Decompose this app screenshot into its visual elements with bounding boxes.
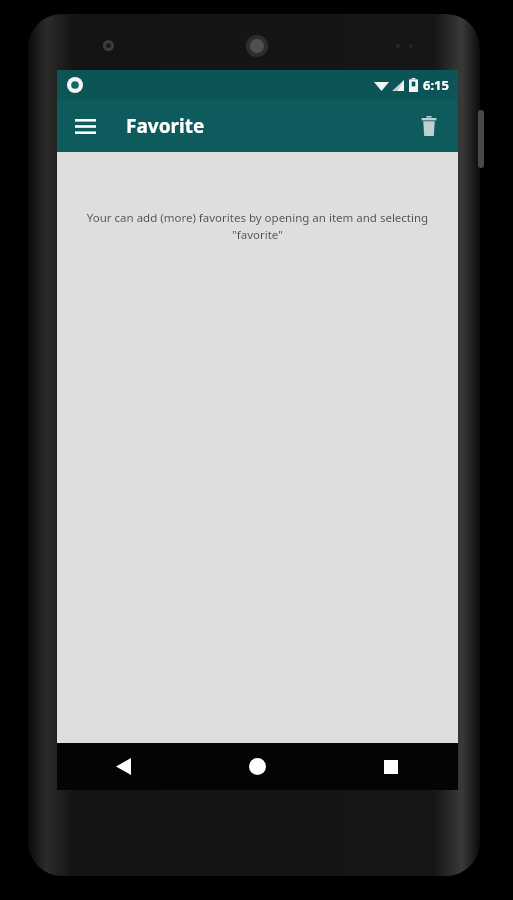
staticText: 6:15 [423, 76, 449, 94]
staticText: Your can add (more) favorites by opening… [83, 210, 432, 242]
button[interactable]: Open navigation drawer [65, 106, 105, 146]
button[interactable]: Recent apps [324, 743, 458, 790]
button[interactable]: Home [190, 743, 324, 790]
button[interactable]: Back [57, 743, 190, 790]
button[interactable]: Delete all favorites [408, 105, 450, 147]
staticText: Favorite [126, 113, 205, 139]
